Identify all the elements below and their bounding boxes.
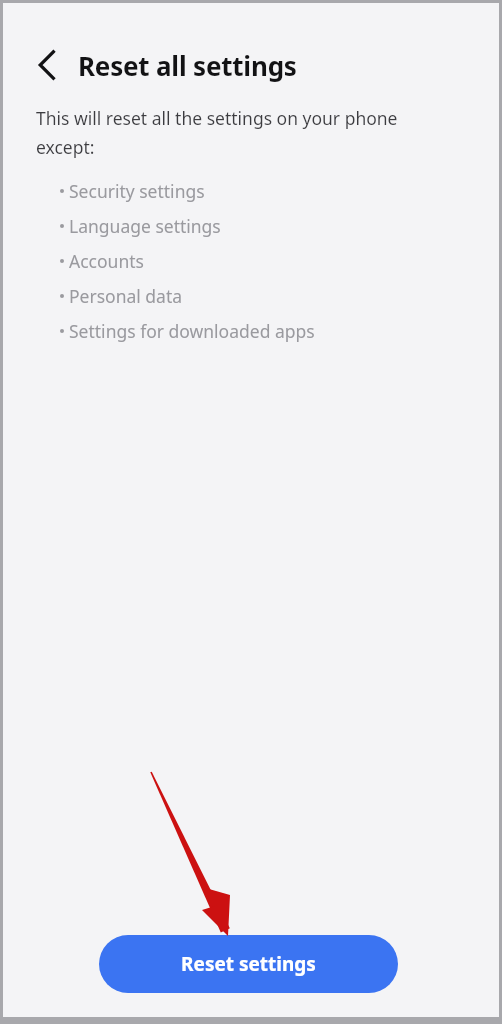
staticText: Reset settings xyxy=(181,951,316,977)
staticText: This will reset all the settings on your… xyxy=(36,106,429,159)
button[interactable]: Back xyxy=(28,46,66,84)
staticText: Settings for downloaded apps xyxy=(69,319,315,343)
staticText: Security settings xyxy=(69,179,205,203)
staticText: Language settings xyxy=(69,214,221,238)
staticText: Accounts xyxy=(69,249,144,273)
staticText: Reset all settings xyxy=(78,48,297,83)
button[interactable]: Reset settings xyxy=(99,935,398,993)
staticText: Personal data xyxy=(69,284,183,308)
